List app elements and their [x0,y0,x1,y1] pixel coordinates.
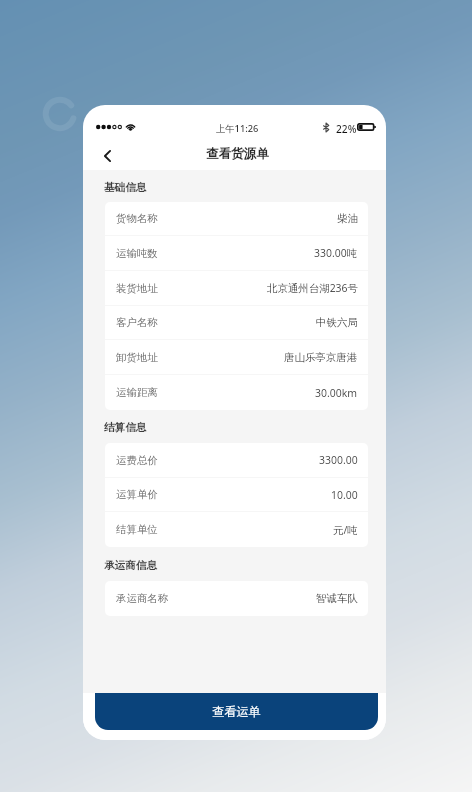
staticText: 客户名称 [116,316,158,329]
staticText: 3300.00 [319,453,358,467]
staticText: 承运商名称 [116,592,169,605]
button[interactable]: 装货地址 [105,271,368,305]
button[interactable]: 运费总价 [105,443,368,477]
button[interactable]: 结算单位 [105,512,368,547]
button[interactable]: 承运商名称 [105,581,368,616]
button[interactable]: 运输吨数 [105,236,368,270]
staticText: 卸货地址 [116,351,158,364]
button[interactable]: Back [95,143,120,168]
staticText: 330.00吨 [314,246,358,260]
button[interactable]: 运输距离 [105,375,368,410]
staticText: 运输吨数 [116,247,158,260]
staticText: 30.00km [315,386,358,400]
staticText: 装货地址 [116,282,158,295]
staticText: 查看运单 [212,704,261,719]
button[interactable]: 运算单价 [105,478,368,511]
staticText: 结算信息 [104,421,147,434]
staticText: 智诚车队 [316,592,358,605]
staticText: 查看货源单 [206,146,269,162]
staticText: 中铁六局 [316,316,358,329]
staticText: 上午11:26 [216,122,259,135]
staticText: 承运商信息 [104,559,157,572]
button[interactable]: 查看运单 [95,693,378,730]
staticText: 10.00 [331,488,358,502]
staticText: 柴油 [337,212,358,225]
staticText: 北京通州台湖236号 [267,281,358,295]
staticText: 运输距离 [116,386,158,399]
staticText: 22% [336,122,357,136]
staticText: 唐山乐亭京唐港 [284,351,358,364]
staticText: 运算单价 [116,488,158,501]
button[interactable]: 客户名称 [105,306,368,339]
staticText: 运费总价 [116,454,158,467]
button[interactable]: 卸货地址 [105,340,368,374]
button[interactable]: 货物名称 [105,202,368,235]
staticText: 结算单位 [116,523,158,536]
staticText: 基础信息 [104,181,147,194]
staticText: 货物名称 [116,212,158,225]
staticText: 元/吨 [333,523,358,537]
